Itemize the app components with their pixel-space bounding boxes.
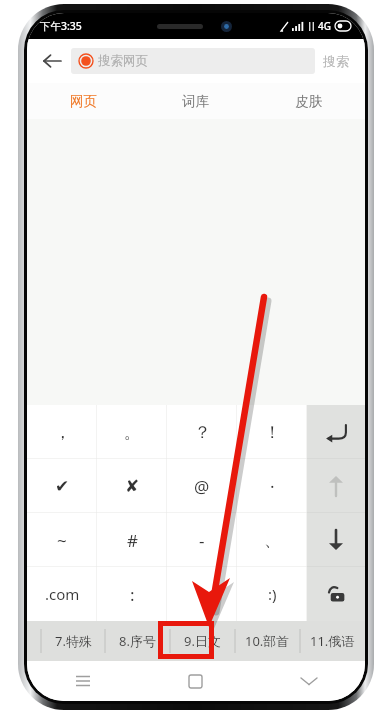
button[interactable]: Enter (307, 405, 365, 459)
button[interactable]: 10.部首 (235, 621, 300, 661)
button[interactable]: ， (27, 405, 97, 459)
button[interactable]: 8.序号 (105, 621, 170, 661)
staticText: 9.日文 (184, 632, 221, 650)
button[interactable]: ！ (237, 405, 307, 459)
staticText: 10.部首 (245, 632, 290, 650)
staticText: 搜索网页 (98, 53, 148, 69)
button[interactable]: - (167, 513, 237, 567)
staticText: ， (54, 422, 71, 443)
button[interactable]: Recents (27, 661, 139, 701)
staticText: 11.俄语 (310, 632, 355, 650)
staticText: ✘ (125, 476, 140, 496)
button[interactable]: ？ (167, 405, 237, 459)
staticText: # (127, 529, 138, 552)
staticText: .com (45, 584, 80, 604)
button[interactable]: 搜索网页 (71, 48, 315, 74)
button[interactable]: Lock (307, 567, 365, 621)
staticText: 4G (318, 19, 331, 33)
button[interactable]: ✘ (97, 459, 167, 513)
button[interactable]: 网页 (27, 83, 139, 119)
staticText: 皮肤 (295, 93, 322, 110)
staticText: 词库 (182, 93, 209, 110)
button[interactable]: 9.日文 (170, 621, 235, 661)
button[interactable]: :) (237, 567, 307, 621)
button[interactable]: 词库 (139, 83, 252, 119)
button[interactable]: 11.俄语 (300, 621, 365, 661)
button[interactable]: @ (167, 459, 237, 513)
button[interactable]: Up (307, 459, 365, 513)
staticText: ？ (194, 422, 211, 443)
staticText: 搜索 (323, 53, 349, 69)
staticText: 网页 (70, 93, 97, 110)
button[interactable]: * (167, 567, 237, 621)
button[interactable]: ✔ (27, 459, 97, 513)
button[interactable]: Hide keyboard (252, 661, 365, 701)
staticText: * (197, 583, 207, 606)
staticText: @ (194, 475, 210, 498)
button[interactable]: 。 (97, 405, 167, 459)
staticText: ✔ (55, 476, 70, 496)
button[interactable]: 搜索 (315, 47, 357, 75)
button[interactable]: 7.特殊 (41, 621, 105, 661)
staticText: 8.序号 (119, 632, 156, 650)
button[interactable]: ~ (27, 513, 97, 567)
button[interactable]: 、 (237, 513, 307, 567)
staticText: 、 (264, 530, 281, 551)
button[interactable]: .com (27, 567, 97, 621)
button[interactable]: # (97, 513, 167, 567)
button[interactable]: 皮肤 (252, 83, 365, 119)
staticText: 7.特殊 (55, 632, 92, 650)
button[interactable]: Back (35, 44, 69, 78)
staticText: 下午3:35 (40, 19, 82, 33)
staticText: : (130, 583, 135, 606)
button[interactable]: · (237, 459, 307, 513)
staticText: ~ (57, 529, 67, 552)
button[interactable]: Home (139, 661, 252, 701)
staticText: :) (268, 584, 277, 604)
staticText: - (199, 529, 205, 552)
button[interactable]: Down (307, 513, 365, 567)
button[interactable]: : (97, 567, 167, 621)
staticText: · (270, 475, 275, 498)
staticText: ！ (264, 422, 281, 443)
staticText: 。 (124, 422, 141, 443)
